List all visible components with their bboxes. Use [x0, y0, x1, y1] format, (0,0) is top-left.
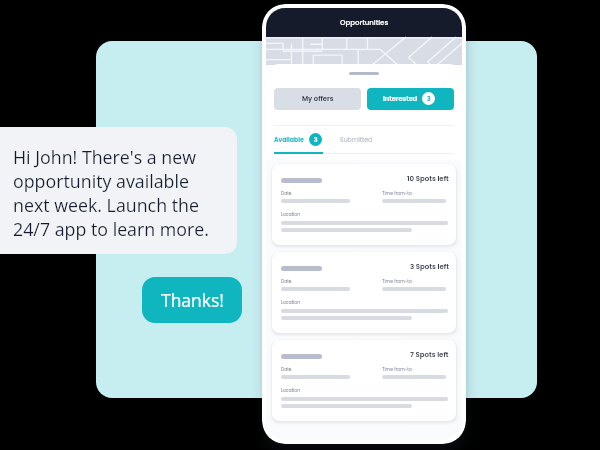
staticText: 7 Spots left [410, 350, 449, 360]
button[interactable]: 3 Spots left [272, 252, 456, 333]
staticText: Time from-to [382, 190, 412, 196]
button[interactable]: 7 Spots left [272, 340, 456, 421]
staticText: Time from-to [382, 366, 412, 372]
staticText: Date [281, 278, 292, 284]
button[interactable]: 10 Spots left [272, 164, 456, 245]
staticText: Location [281, 299, 301, 305]
staticText: Date [281, 366, 292, 372]
button[interactable]: Available [274, 133, 322, 146]
staticText: My offers [302, 94, 334, 104]
staticText: Interested [383, 94, 418, 103]
staticText: Opportunities [340, 18, 389, 28]
staticText: Hi John! There's a new opportunity avail… [13, 145, 209, 241]
button[interactable]: Submitted [340, 135, 373, 144]
staticText: Thanks! [161, 288, 224, 312]
staticText: Available [274, 135, 304, 144]
button[interactable]: Thanks! [142, 277, 242, 323]
staticText: Time from-to [382, 278, 412, 284]
staticText: Submitted [340, 135, 373, 144]
button[interactable]: My offers [274, 88, 361, 110]
staticText: 10 Spots left [407, 174, 449, 184]
staticText: Location [281, 211, 301, 217]
staticText: 3 [314, 136, 318, 144]
staticText: 3 Spots left [410, 262, 449, 272]
staticText: Location [281, 387, 301, 393]
staticText: Date [281, 190, 292, 196]
button[interactable]: Interested [367, 88, 454, 110]
staticText: 3 [427, 95, 431, 103]
